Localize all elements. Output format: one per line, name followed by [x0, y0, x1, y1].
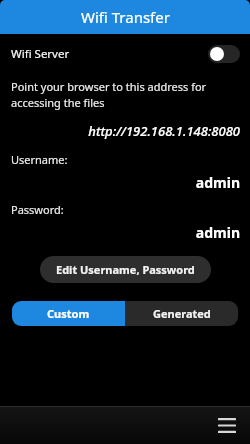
- button[interactable]: Edit Username, Password: [40, 256, 211, 283]
- staticText: Password:: [11, 202, 64, 217]
- button[interactable]: Menu: [212, 410, 242, 440]
- staticText: Generated: [153, 306, 211, 321]
- staticText: Edit Username, Password: [56, 262, 195, 277]
- staticText: admin: [0, 173, 240, 192]
- staticText: http://192.168.1.148:8080: [0, 122, 240, 140]
- button[interactable]: Wifi Server: [0, 34, 250, 74]
- staticText: Custom: [47, 306, 90, 321]
- button[interactable]: Generated: [125, 301, 238, 326]
- staticText: admin: [0, 223, 240, 242]
- staticText: Username:: [11, 152, 68, 167]
- staticText: Wifi Transfer: [81, 7, 170, 27]
- staticText: Point your browser to this address for a…: [11, 79, 236, 110]
- staticText: Wifi Server: [11, 46, 70, 62]
- button[interactable]: Custom: [12, 301, 125, 326]
- button[interactable]: Wifi Server toggle: [208, 45, 240, 63]
